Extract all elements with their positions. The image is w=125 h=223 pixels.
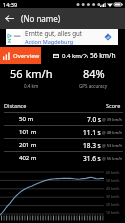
staticText: 0.4 km xyxy=(62,52,81,60)
staticText: 7.0 s xyxy=(87,115,101,124)
staticText: @ 53 km/h xyxy=(102,143,123,148)
staticText: GPS accuracy xyxy=(79,83,108,89)
button[interactable]: Erntte gut, alles gut xyxy=(6,29,118,45)
staticText: 101 m xyxy=(19,128,37,136)
staticText: 10 km/h xyxy=(106,210,120,215)
staticText: @ 39 km/h xyxy=(102,117,123,122)
staticText: 56 km/h xyxy=(90,51,116,60)
button[interactable]: Overview xyxy=(0,47,41,64)
staticText: 84% xyxy=(83,66,105,81)
staticText: @ 48 km/h xyxy=(102,130,123,135)
staticText: (No name) xyxy=(21,13,61,24)
staticText: 11.1 s xyxy=(83,128,101,137)
staticText: @ 56 km/h xyxy=(102,156,123,161)
staticText: 40 km/h xyxy=(106,186,120,191)
staticText: 14:39 xyxy=(3,1,18,8)
staticText: 50 km/h xyxy=(106,178,120,183)
staticText: 60 km/h xyxy=(106,170,120,175)
staticText: 0.4 km xyxy=(24,83,39,89)
button[interactable]: Back xyxy=(0,8,19,29)
staticText: 30 km/h xyxy=(106,194,120,199)
staticText: 31.6 s xyxy=(83,154,101,163)
button[interactable]: 50 m xyxy=(4,113,123,125)
staticText: 20 km/h xyxy=(106,202,120,207)
staticText: Action Magdeburg xyxy=(25,38,74,45)
staticText: Erntte gut, alles gut xyxy=(25,29,83,37)
button[interactable]: 402 m xyxy=(4,152,123,164)
staticText: Score xyxy=(106,102,121,109)
staticText: Overview xyxy=(13,52,40,60)
staticText: 56 km/h xyxy=(10,66,53,81)
staticText: 402 m xyxy=(19,154,37,162)
staticText: Distance xyxy=(4,102,27,109)
button[interactable]: 101 m xyxy=(4,126,123,138)
staticText: 201 m xyxy=(19,141,37,149)
staticText: 18.3 s xyxy=(83,141,101,150)
staticText: 50 m xyxy=(19,115,34,123)
button[interactable]: 201 m xyxy=(4,139,123,151)
